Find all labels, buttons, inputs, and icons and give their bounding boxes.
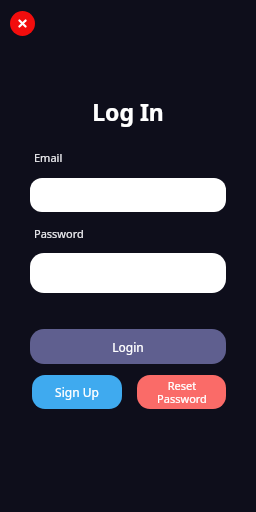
staticText: Login <box>112 339 144 355</box>
button[interactable]: Reset Password <box>137 375 226 409</box>
staticText: Log In <box>92 96 164 127</box>
button[interactable]: Close <box>10 11 35 36</box>
button[interactable] <box>30 178 226 212</box>
staticText: Email <box>34 150 63 165</box>
button[interactable] <box>30 253 226 293</box>
staticText: Sign Up <box>55 384 99 400</box>
staticText: Reset Password <box>157 378 207 406</box>
staticText: Password <box>34 226 84 241</box>
button[interactable]: Login <box>30 329 226 364</box>
button[interactable]: Sign Up <box>32 375 122 409</box>
